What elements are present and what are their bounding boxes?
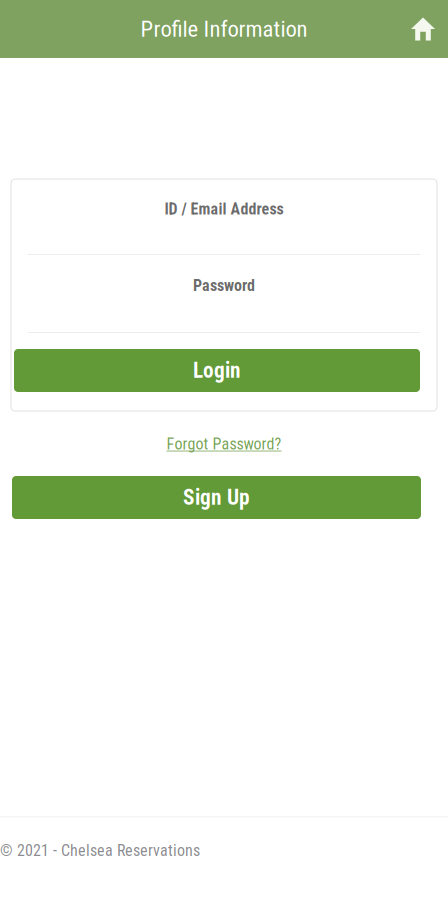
button[interactable]: Sign Up bbox=[12, 476, 421, 519]
staticText: Login bbox=[193, 358, 241, 383]
button[interactable]: Login bbox=[14, 349, 420, 392]
staticText: Sign Up bbox=[183, 485, 250, 510]
button[interactable]: Password bbox=[11, 255, 437, 332]
staticText: Forgot Password? bbox=[166, 435, 281, 453]
staticText: Password bbox=[193, 276, 255, 295]
button[interactable]: Forgot Password? bbox=[156, 427, 291, 461]
button[interactable]: ID / Email Address bbox=[11, 179, 437, 254]
button[interactable]: Home bbox=[398, 0, 448, 58]
staticText: Profile Information bbox=[140, 16, 307, 42]
staticText: ID / Email Address bbox=[164, 200, 283, 218]
staticText: © 2021 - Chelsea Reservations bbox=[0, 841, 200, 860]
